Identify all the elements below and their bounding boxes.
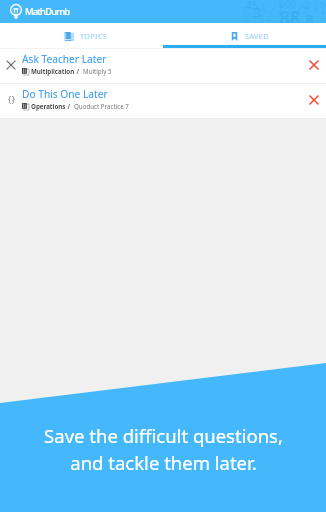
staticText: Save the difficult questions, [44,423,283,448]
button[interactable]: MathDumb [0,0,78,23]
staticText: 8 [304,4,310,16]
staticText: TOPICS [80,31,108,41]
other: MathDumb [10,4,22,21]
staticText: 45 [245,0,259,13]
staticText: and tackle them later. [70,450,257,475]
staticText: 2 [277,3,283,17]
staticText: / [75,67,81,75]
staticText: Quoduct Practice 7 [74,102,129,110]
button[interactable]: Ask teacher later [0,49,22,83]
staticText: 8 [305,9,314,23]
staticText: 3 [253,3,262,22]
staticText: 88 [279,5,301,23]
button[interactable]: Remove [302,49,326,83]
button[interactable]: SAVED [163,23,326,49]
staticText: / [297,2,302,17]
button[interactable]: Practice question [0,84,22,118]
staticText: Multiplication [31,67,75,75]
staticText: 0 [289,6,294,16]
staticText: Ask Teacher Later [22,52,107,66]
button[interactable]: TOPICS [0,23,163,49]
button[interactable]: Remove [302,84,326,118]
staticText: Operations [31,102,66,110]
staticText: / [66,102,72,110]
staticText: { } [8,94,15,106]
button[interactable]: Practice question [0,84,326,118]
staticText: Do This One Later [22,87,108,101]
staticText: MathDumb [25,5,70,18]
button[interactable]: Ask teacher later [0,49,326,83]
staticText: Multiply 5 [83,67,112,75]
staticText: SAVED [245,31,269,41]
